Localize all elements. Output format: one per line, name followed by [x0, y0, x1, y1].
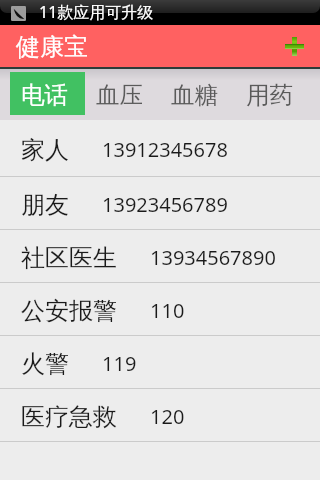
staticText: 用药 — [246, 80, 293, 110]
button[interactable]: 公安报警 — [0, 283, 320, 336]
button[interactable]: 血压 — [82, 69, 157, 111]
staticText: 公安报警 — [21, 296, 117, 326]
staticText: 健康宝 — [16, 32, 88, 62]
staticText: 社区医生 — [21, 243, 117, 273]
button[interactable]: 血糖 — [157, 69, 232, 111]
button[interactable]: 电话 — [7, 69, 82, 111]
staticText: 朋友 — [21, 190, 69, 220]
button[interactable]: 家人 — [0, 120, 320, 177]
staticText: 13923456789 — [102, 191, 228, 218]
staticText: 血压 — [96, 80, 143, 110]
staticText: 13912345678 — [102, 136, 228, 163]
button[interactable]: 朋友 — [0, 177, 320, 230]
button[interactable]: Add — [281, 33, 307, 59]
staticText: 血糖 — [171, 80, 218, 110]
staticText: 家人 — [21, 135, 69, 165]
staticText: 11款应用可升级 — [39, 1, 154, 23]
staticText: 110 — [150, 297, 185, 324]
staticText: 电话 — [21, 80, 68, 110]
staticText: 火警 — [21, 349, 69, 379]
staticText: 119 — [102, 350, 137, 377]
button[interactable]: 用药 — [232, 69, 307, 111]
button[interactable]: 医疗急救 — [0, 389, 320, 442]
button[interactable]: 社区医生 — [0, 230, 320, 283]
staticText: 医疗急救 — [21, 402, 117, 432]
staticText: 120 — [150, 403, 185, 430]
button[interactable]: 火警 — [0, 336, 320, 389]
staticText: 13934567890 — [150, 244, 276, 271]
